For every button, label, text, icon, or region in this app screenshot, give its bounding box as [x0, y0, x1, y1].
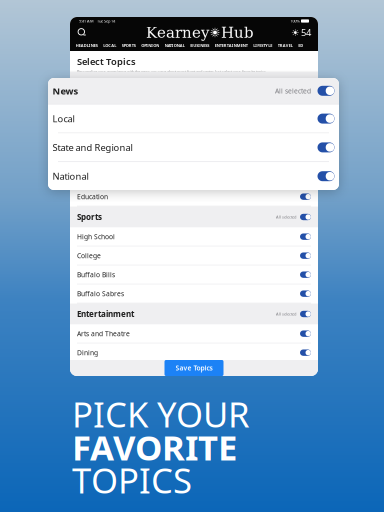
staticText: News [77, 77, 100, 87]
button[interactable]: Toggle on [317, 86, 334, 96]
staticText: Sports [77, 212, 102, 222]
staticText: Dining [77, 348, 98, 357]
button[interactable]: College [70, 246, 318, 265]
button[interactable]: National [70, 130, 318, 149]
button[interactable]: NATIONAL [162, 43, 187, 48]
button[interactable]: Local [48, 105, 339, 133]
button[interactable]: ED [295, 43, 306, 48]
staticText: OPINION [141, 43, 159, 48]
button[interactable]: Toggle on [300, 252, 311, 259]
staticText: All selected [275, 86, 311, 95]
staticText: Personalize your experience with the new… [77, 69, 267, 74]
button[interactable]: Toggle on [300, 349, 311, 356]
button[interactable]: High School [70, 227, 318, 246]
staticText: TOPICS [72, 457, 192, 503]
button[interactable]: LOCAL [100, 43, 119, 48]
button[interactable]: Toggle on [300, 213, 311, 220]
button[interactable]: Toggle on [317, 114, 334, 124]
button[interactable]: Buffalo Bills [70, 265, 318, 284]
staticText: Buffalo Sabres [77, 289, 124, 298]
staticText: Select Topics [77, 55, 136, 68]
button[interactable]: Toggle on [300, 193, 311, 200]
button[interactable]: Toggle on [317, 171, 334, 181]
staticText: PICK YOUR [72, 391, 250, 437]
button[interactable]: Save Topics [164, 360, 223, 376]
button[interactable]: Local [70, 92, 318, 111]
staticText: State and Regional [52, 141, 132, 154]
button[interactable]: HEADLINES [73, 43, 100, 48]
button[interactable]: SPORTS [119, 43, 138, 48]
button[interactable]: TRAVEL [275, 43, 295, 48]
staticText: Weather [77, 173, 104, 182]
button[interactable]: ENTERTAINMENT [212, 43, 250, 48]
staticText: College [77, 251, 101, 260]
staticText: ED [298, 43, 303, 48]
button[interactable]: News [70, 71, 318, 92]
staticText: LIFESTYLE [253, 43, 272, 48]
staticText: HEADLINES [76, 43, 98, 48]
button[interactable]: Toggle on [300, 330, 311, 337]
staticText: Local [77, 97, 93, 106]
staticText: Local [52, 112, 74, 125]
button[interactable]: Toggle on [300, 233, 311, 240]
button[interactable]: Obituaries [70, 149, 318, 168]
button[interactable]: National [48, 162, 339, 190]
button[interactable]: Toggle on [300, 310, 311, 317]
button[interactable]: Sports [70, 206, 318, 227]
staticText: 9:41 AM Tue Sep 14 [79, 18, 115, 24]
staticText: Obituaries [77, 154, 110, 163]
button[interactable]: Education [70, 187, 318, 206]
staticText: National [52, 170, 88, 182]
staticText: LOCAL [103, 43, 116, 48]
button[interactable]: Dining [70, 343, 318, 362]
staticText: NATIONAL [165, 43, 185, 48]
button[interactable]: Entertainment [70, 303, 318, 324]
button[interactable]: Toggle on [300, 271, 311, 278]
button[interactable]: BUSINESS [187, 43, 212, 48]
button[interactable]: Arts and Theatre [70, 324, 318, 343]
button[interactable]: Toggle on [300, 290, 311, 297]
staticText: BUSINESS [190, 43, 209, 48]
button[interactable]: OPINION [138, 43, 162, 48]
staticText: Education [77, 192, 108, 201]
staticText: All selected [276, 311, 296, 317]
staticText: FAVORITE [72, 424, 237, 470]
staticText: Kearney [146, 24, 209, 41]
staticText: High School [77, 232, 115, 241]
staticText: All selected [276, 214, 296, 220]
staticText: TRAVEL [278, 43, 293, 48]
staticText: SPORTS [122, 43, 136, 48]
staticText: 100% [290, 18, 299, 24]
staticText: Arts and Theatre [77, 329, 130, 338]
staticText: News [52, 85, 78, 97]
staticText: Buffalo Bills [77, 270, 115, 279]
button[interactable]: State and Regional [70, 111, 318, 130]
button[interactable]: Search [76, 26, 88, 38]
button[interactable]: Buffalo Sabres [70, 284, 318, 303]
button[interactable]: Weather [70, 168, 318, 187]
staticText: ☀ 54 [291, 26, 311, 39]
button[interactable]: LIFESTYLE [250, 43, 275, 48]
button[interactable]: Toggle on [300, 155, 311, 162]
button[interactable]: News [48, 78, 339, 104]
staticText: ENTERTAINMENT [215, 43, 248, 48]
button[interactable]: Toggle on [317, 142, 334, 152]
staticText: Entertainment [77, 309, 134, 319]
staticText: Save Topics [175, 364, 212, 372]
staticText: Hub [221, 24, 254, 41]
button[interactable]: State and Regional [48, 133, 339, 161]
